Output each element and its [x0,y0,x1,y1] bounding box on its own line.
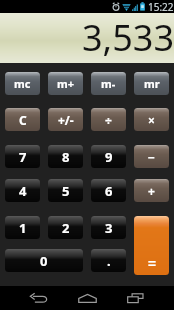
button[interactable]: m+ [48,72,83,95]
button[interactable]: m- [91,72,126,95]
staticText: 7 [19,148,27,166]
staticText: × [148,112,155,128]
staticText: . [107,252,111,270]
staticText: 1 [19,219,27,237]
staticText: mc [14,76,31,91]
button[interactable]: 3 [91,216,126,239]
staticText: m- [101,76,116,91]
staticText: 6 [105,182,113,200]
staticText: mr [144,76,160,91]
staticText: 3 [105,219,113,237]
staticText: m+ [57,76,75,91]
staticText: +/- [58,112,74,128]
button[interactable]: Back [15,286,63,310]
staticText: C [19,112,27,128]
button[interactable]: mr [134,72,169,95]
button[interactable]: 2 [48,216,83,239]
button[interactable]: ÷ [91,108,126,131]
button[interactable]: +/- [48,108,83,131]
button[interactable]: × [134,108,169,131]
button[interactable]: Equals [134,216,169,275]
staticText: ÷ [105,112,112,128]
staticText: 2 [62,219,70,237]
button[interactable]: . [91,249,126,272]
button[interactable]: 8 [48,145,83,168]
staticText: 15:22 [148,0,174,13]
staticText: 9 [105,148,113,166]
button[interactable]: 0 [5,249,83,272]
button[interactable]: 7 [5,145,40,168]
staticText: 3,533 [82,13,174,62]
button[interactable]: 9 [91,145,126,168]
button[interactable]: mc [5,72,40,95]
button[interactable]: − [134,145,169,168]
staticText: − [148,149,155,165]
button[interactable]: + [134,179,169,202]
staticText: 0 [40,252,48,270]
button[interactable]: 4 [5,179,40,202]
staticText: 8 [62,148,70,166]
button[interactable]: C [5,108,40,131]
button[interactable]: 6 [91,179,126,202]
button[interactable]: Recent apps [111,286,159,310]
staticText: 5 [62,182,70,200]
button[interactable]: 1 [5,216,40,239]
staticText: 4 [19,182,27,200]
button[interactable]: 5 [48,179,83,202]
button[interactable]: Home [63,286,111,310]
staticText: + [148,183,155,199]
